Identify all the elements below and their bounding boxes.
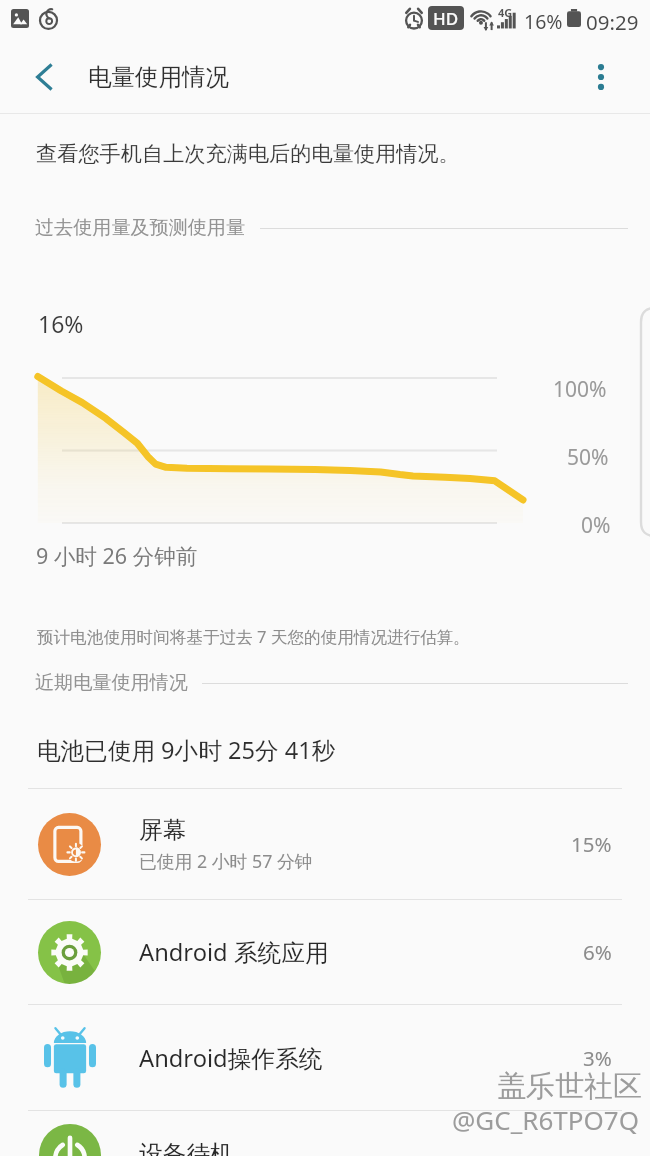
staticText: 6% — [583, 938, 612, 966]
staticText: 近期电量使用情况 — [35, 671, 188, 695]
staticText: 已使用 2 小时 57 分钟 — [139, 849, 313, 873]
staticText: HD — [433, 7, 459, 30]
staticText: 100% — [553, 375, 607, 404]
button[interactable]: More options — [573, 49, 629, 105]
staticText: 0% — [581, 511, 611, 540]
staticText: 电量使用情况 — [88, 62, 229, 92]
button[interactable]: Back — [16, 49, 72, 105]
staticText: 电池已使用 9小时 25分 41秒 — [37, 734, 336, 766]
button[interactable]: 设备待机 — [0, 1111, 650, 1156]
staticText: 16% — [38, 308, 84, 339]
staticText: @GC_R6TPO7Q — [452, 1102, 639, 1137]
staticText: 屏幕 — [139, 815, 187, 845]
staticText: 预计电池使用时间将基于过去 7 天您的使用情况进行估算。 — [37, 625, 470, 648]
staticText: 设备待机 — [139, 1139, 234, 1156]
staticText: 3% — [583, 1044, 612, 1072]
staticText: 50% — [567, 443, 609, 472]
staticText: 9 小时 26 分钟前 — [36, 541, 198, 570]
staticText: 4G — [498, 5, 513, 20]
staticText: Android操作系统 — [139, 1042, 323, 1074]
staticText: 查看您手机自上次充满电后的电量使用情况。 — [36, 141, 460, 168]
staticText: 09:29 — [586, 8, 639, 36]
staticText: 过去使用量及预测使用量 — [35, 216, 246, 240]
staticText: 盖乐世社区 — [497, 1068, 642, 1105]
button[interactable]: 屏幕 — [0, 789, 650, 899]
button[interactable]: Android操作系统 — [0, 1005, 650, 1110]
staticText: Android 系统应用 — [139, 936, 329, 968]
button[interactable]: Android 系统应用 — [0, 900, 650, 1004]
staticText: 16% — [524, 8, 563, 35]
staticText: 15% — [571, 830, 612, 858]
